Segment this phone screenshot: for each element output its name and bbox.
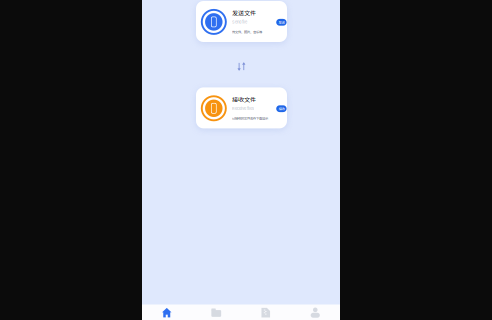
staticText: 接收文件 — [232, 95, 256, 104]
staticText: 已接收的文件会在下面显示 — [232, 116, 268, 121]
staticText: 传文件、照片、音乐等 — [232, 30, 262, 34]
button[interactable]: 发送文件 — [196, 1, 287, 42]
staticText: 接收 — [278, 106, 284, 111]
staticText: Send file — [232, 20, 247, 24]
staticText: 发送文件 — [232, 8, 256, 17]
button[interactable]: Home — [142, 304, 191, 320]
button[interactable]: Files — [191, 304, 241, 320]
button[interactable]: Profile — [290, 304, 340, 320]
staticText: Receive files — [232, 106, 254, 111]
button[interactable]: 接收文件 — [196, 87, 287, 128]
button[interactable]: Compressed files — [241, 304, 290, 320]
staticText: 发送 — [278, 20, 284, 25]
